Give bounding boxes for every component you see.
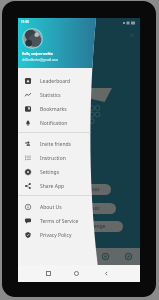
staticText: Hello, sanjeev mehta	[22, 52, 53, 56]
staticText: Bookmarks	[40, 106, 67, 113]
staticText: Challenge	[82, 223, 106, 230]
staticText: shilbakleviar@gmail.com	[22, 58, 59, 62]
staticText: Share App	[40, 183, 65, 190]
button[interactable]: Leaderboard	[18, 74, 102, 88]
staticText: Settings	[40, 169, 60, 176]
staticText: Instruction	[40, 155, 66, 162]
button[interactable]: Settings	[18, 165, 102, 179]
button[interactable]: Quiz	[54, 203, 116, 214]
button[interactable]: Back	[103, 270, 110, 277]
button[interactable]: Tab	[102, 253, 109, 260]
button[interactable]: About Us	[18, 200, 102, 214]
button[interactable]: Bookmarks	[18, 102, 102, 116]
staticText: Privacy Policy	[40, 232, 72, 239]
staticText: About Us	[40, 204, 62, 211]
staticText: Quiz	[89, 205, 100, 212]
staticText: Leaderboard	[40, 78, 71, 85]
button[interactable]: Instruction	[18, 151, 102, 165]
staticText: Statistics	[40, 92, 61, 99]
staticText: 11:56	[21, 20, 29, 24]
staticText: Invite friends	[40, 141, 71, 148]
button[interactable]: Notification	[18, 116, 102, 130]
button[interactable]: Share App	[18, 179, 102, 193]
button[interactable]: 11:56	[18, 18, 102, 68]
button[interactable]: Recents	[45, 270, 52, 277]
button[interactable]: Quiz	[54, 184, 111, 195]
staticText: Quiz	[89, 186, 100, 193]
button[interactable]: Menu	[129, 32, 135, 38]
staticText: Notification	[40, 120, 68, 127]
button[interactable]: Privacy Policy	[18, 228, 102, 242]
button[interactable]: Invite friends	[18, 137, 102, 151]
staticText: Terms of Service	[40, 218, 79, 225]
button[interactable]: Terms of Service	[18, 214, 102, 228]
button[interactable]: Home	[73, 270, 80, 277]
button[interactable]: Challenge	[54, 221, 123, 232]
button[interactable]: Tab	[125, 253, 132, 260]
button[interactable]: Statistics	[18, 88, 102, 102]
